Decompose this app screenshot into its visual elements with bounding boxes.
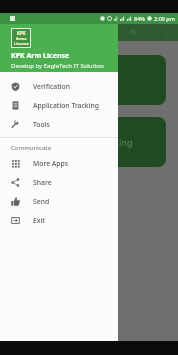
button[interactable]: Search — [128, 27, 139, 38]
staticText: Send — [33, 197, 50, 206]
button[interactable]: Exit — [0, 211, 118, 230]
staticText: Application Tracking — [45, 136, 133, 148]
staticText: Arms — [16, 36, 27, 41]
staticText: Exit — [33, 216, 45, 225]
button[interactable]: More options — [161, 27, 172, 38]
staticText: License — [14, 41, 29, 46]
staticText: Tools — [33, 120, 50, 129]
button[interactable]: Application Tracking — [12, 117, 166, 167]
staticText: Application Tracking — [33, 101, 99, 110]
staticText: KPK Arm License — [11, 51, 70, 61]
staticText: 84% — [134, 15, 145, 22]
staticText: Develop by EagleTech IT Solution — [11, 62, 104, 70]
staticText: Verification — [33, 82, 70, 91]
staticText: Share — [33, 178, 52, 187]
button[interactable] — [12, 55, 166, 105]
staticText: 2:09 pm — [154, 15, 175, 22]
button[interactable]: Send — [0, 192, 118, 211]
button[interactable]: KPK — [0, 24, 118, 72]
button[interactable]: More Apps — [0, 154, 118, 173]
button[interactable]: Verification — [0, 77, 118, 96]
staticText: More Apps — [33, 159, 68, 168]
staticText: Communicate — [11, 144, 52, 152]
button[interactable]: Tools — [0, 115, 118, 134]
staticText: KPK — [17, 30, 26, 36]
button[interactable]: Share — [0, 173, 118, 192]
button[interactable]: Application Tracking — [0, 96, 118, 115]
